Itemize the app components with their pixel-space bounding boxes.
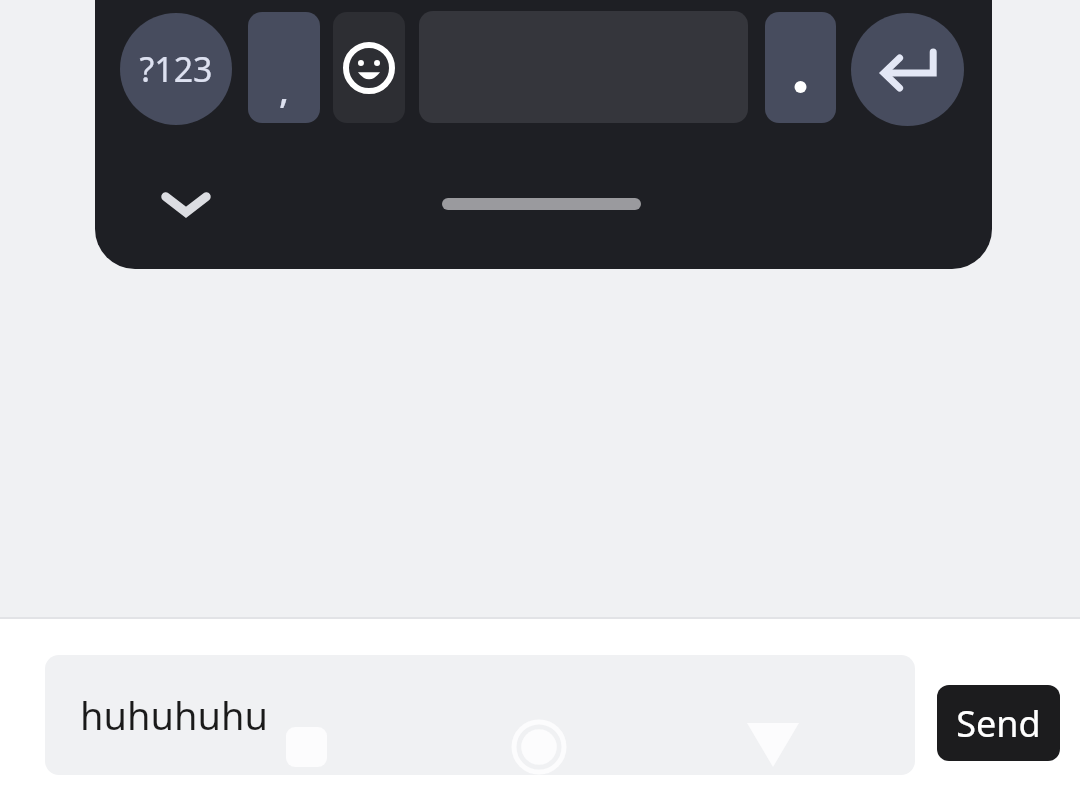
button[interactable] [765,12,836,123]
staticText: ?123 [139,46,213,92]
button[interactable]: huhuhuhu [45,655,915,775]
button[interactable]: Emoji [333,12,405,123]
button[interactable]: Send [937,685,1060,761]
button[interactable]: Back [747,723,799,767]
button[interactable]: , [248,12,320,123]
button[interactable]: Hide keyboard [150,168,222,240]
staticText: , [279,65,289,114]
button[interactable]: ?123 [120,13,232,125]
button[interactable]: Enter [851,13,964,126]
staticText: huhuhuhu [80,689,268,741]
staticText: Send [956,699,1041,748]
button[interactable]: Home [512,720,566,774]
